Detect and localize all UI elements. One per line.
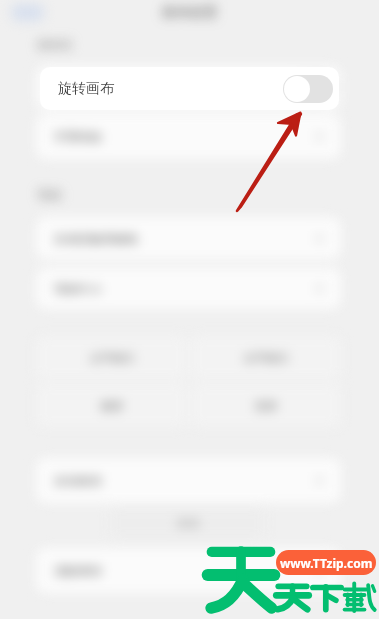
button[interactable]: 旋转画布 — [36, 66, 341, 109]
staticText: 清除缓存 — [54, 563, 102, 578]
staticText: 手势缩放 — [54, 129, 102, 144]
staticText: 竖屏 — [255, 399, 277, 413]
button[interactable]: 左手模式 — [36, 336, 187, 379]
staticText: 自动保存 — [54, 473, 102, 488]
button[interactable]: 手势缩放 — [36, 114, 341, 159]
staticText: 横屏 — [101, 399, 123, 413]
staticText: 画布区 — [37, 37, 73, 52]
staticText: 画布设置 — [162, 4, 218, 22]
button[interactable]: 横屏 — [36, 384, 187, 427]
button[interactable]: Rotate canvas toggle — [285, 74, 335, 102]
staticText: www.TTzip.com — [280, 555, 373, 571]
button[interactable]: 旋转画布 — [40, 67, 339, 110]
button[interactable]: 自动保存 — [36, 458, 341, 503]
staticText: 右手模式 — [244, 351, 288, 365]
button[interactable]: Rotate canvas toggle — [283, 75, 333, 103]
button[interactable]: Back — [11, 4, 44, 21]
button[interactable]: 清除缓存 — [36, 548, 341, 593]
staticText: 笔刷 — [37, 187, 61, 202]
button[interactable]: 右手模式 — [191, 336, 341, 379]
button[interactable]: 竖屏 — [191, 384, 341, 427]
staticText: 旋转画布 — [54, 80, 102, 95]
staticText: 旋转画布 — [58, 80, 114, 98]
button[interactable]: 笔刷大小 — [36, 268, 341, 309]
staticText: 压感灵敏度曲线 — [54, 231, 138, 246]
staticText: 笔刷大小 — [54, 281, 102, 296]
button[interactable]: 压感灵敏度曲线 — [36, 217, 341, 259]
staticText: 左手模式 — [90, 351, 134, 365]
